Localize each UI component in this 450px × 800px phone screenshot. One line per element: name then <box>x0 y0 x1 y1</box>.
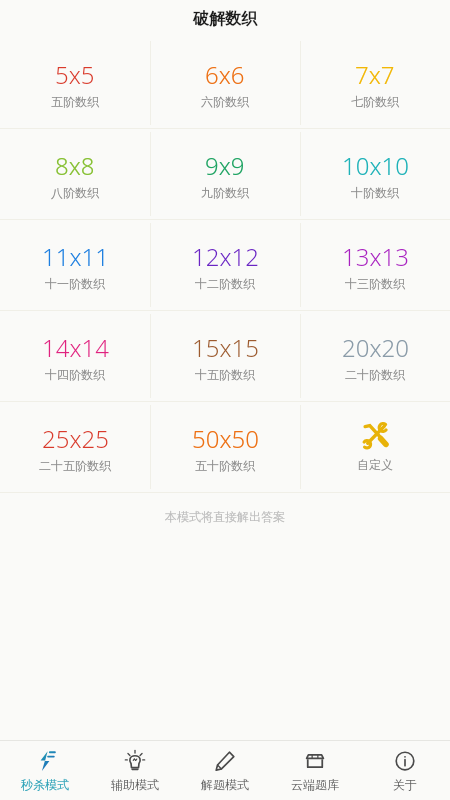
staticText: 14x14 <box>42 331 109 364</box>
staticText: 12x12 <box>192 240 259 273</box>
staticText: 关于 <box>393 777 417 792</box>
other: 解题模式 <box>214 750 236 772</box>
staticText: 云端题库 <box>291 777 339 792</box>
button[interactable]: 5x5 <box>0 38 150 128</box>
button[interactable]: 云端题库 <box>270 741 360 800</box>
staticText: 9x9 <box>205 149 245 182</box>
staticText: 五阶数织 <box>51 94 99 109</box>
staticText: 本模式将直接解出答案 <box>165 509 285 524</box>
button[interactable]: 解题模式 <box>180 741 270 800</box>
staticText: 十四阶数织 <box>45 367 105 382</box>
staticText: 11x11 <box>42 240 109 273</box>
button[interactable]: 50x50 <box>150 402 300 492</box>
button[interactable]: 25x25 <box>0 402 150 492</box>
other: 关于 <box>394 750 416 772</box>
staticText: 十三阶数织 <box>345 276 405 291</box>
staticText: 破解数织 <box>193 9 257 29</box>
button[interactable]: 10x10 <box>300 129 450 219</box>
button[interactable]: 7x7 <box>300 38 450 128</box>
staticText: 20x20 <box>342 331 409 364</box>
staticText: 辅助模式 <box>111 777 159 792</box>
staticText: 10x10 <box>342 149 409 182</box>
staticText: 六阶数织 <box>201 94 249 109</box>
button[interactable]: 秒杀模式 <box>0 741 90 800</box>
button[interactable]: 6x6 <box>150 38 300 128</box>
staticText: 秒杀模式 <box>21 777 69 792</box>
other: 云端题库 <box>304 750 326 772</box>
staticText: 五十阶数织 <box>195 458 255 473</box>
staticText: 13x13 <box>342 240 409 273</box>
button[interactable]: 12x12 <box>150 220 300 310</box>
staticText: 25x25 <box>42 422 109 455</box>
button[interactable]: 11x11 <box>0 220 150 310</box>
staticText: 十阶数织 <box>351 185 399 200</box>
staticText: 九阶数织 <box>201 185 249 200</box>
other: 辅助模式 <box>124 750 146 772</box>
staticText: 二十五阶数织 <box>39 458 111 473</box>
staticText: 十一阶数织 <box>45 276 105 291</box>
button[interactable]: 20x20 <box>300 311 450 401</box>
staticText: 七阶数织 <box>351 94 399 109</box>
staticText: 7x7 <box>355 58 395 91</box>
staticText: 十五阶数织 <box>195 367 255 382</box>
staticText: 8x8 <box>55 149 95 182</box>
staticText: 15x15 <box>192 331 259 364</box>
staticText: 自定义 <box>357 457 393 472</box>
button[interactable]: 自定义 <box>300 402 450 492</box>
button[interactable]: 辅助模式 <box>90 741 180 800</box>
other: 秒杀模式 <box>34 750 56 772</box>
staticText: 50x50 <box>192 422 259 455</box>
button[interactable]: 关于 <box>360 741 450 800</box>
other: 自定义 <box>362 423 388 449</box>
staticText: 十二阶数织 <box>195 276 255 291</box>
button[interactable]: 8x8 <box>0 129 150 219</box>
button[interactable]: 15x15 <box>150 311 300 401</box>
button[interactable]: 9x9 <box>150 129 300 219</box>
staticText: 6x6 <box>205 58 245 91</box>
staticText: 八阶数织 <box>51 185 99 200</box>
button[interactable]: 13x13 <box>300 220 450 310</box>
staticText: 解题模式 <box>201 777 249 792</box>
staticText: 二十阶数织 <box>345 367 405 382</box>
button[interactable]: 14x14 <box>0 311 150 401</box>
staticText: 5x5 <box>55 58 95 91</box>
